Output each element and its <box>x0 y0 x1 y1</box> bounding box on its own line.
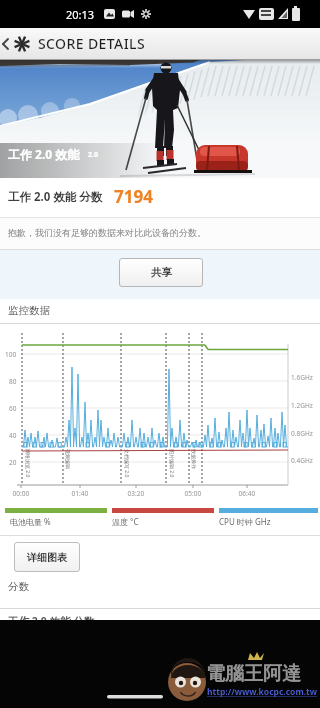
staticText: 温度 °C <box>112 516 139 527</box>
staticText: 共享 <box>151 266 172 279</box>
staticText: 监控数据 <box>8 304 50 317</box>
staticText: 7194 <box>114 185 153 208</box>
staticText: 详细图表 <box>27 551 67 564</box>
staticText: 20:13 <box>66 7 95 22</box>
staticText: 電腦王阿達 <box>206 662 301 686</box>
staticText: http://www.kocpc.com.tw <box>207 686 318 698</box>
staticText: CPU 时钟 GHz <box>219 516 271 527</box>
button[interactable]: 详细图表 <box>14 542 80 572</box>
staticText: 工作 2.0 效能 <box>8 146 80 162</box>
button[interactable]: 工作 2.0 效能 分数 <box>0 178 320 217</box>
staticText: 2.0 <box>88 150 98 160</box>
staticText: 工作 2.0 效能 分数 <box>8 189 103 205</box>
staticText: 工作 2.0 效能 分数 <box>8 614 95 628</box>
staticText: 电池电量 % <box>10 516 51 527</box>
staticText: SCORE DETAILS <box>38 34 145 53</box>
button[interactable]: SCORE DETAILS <box>0 28 320 60</box>
staticText: 分数 <box>8 580 29 593</box>
staticText: 抱歉，我们没有足够的数据来对比此设备的分数。 <box>8 227 206 238</box>
button[interactable]: 共享 <box>119 258 203 287</box>
